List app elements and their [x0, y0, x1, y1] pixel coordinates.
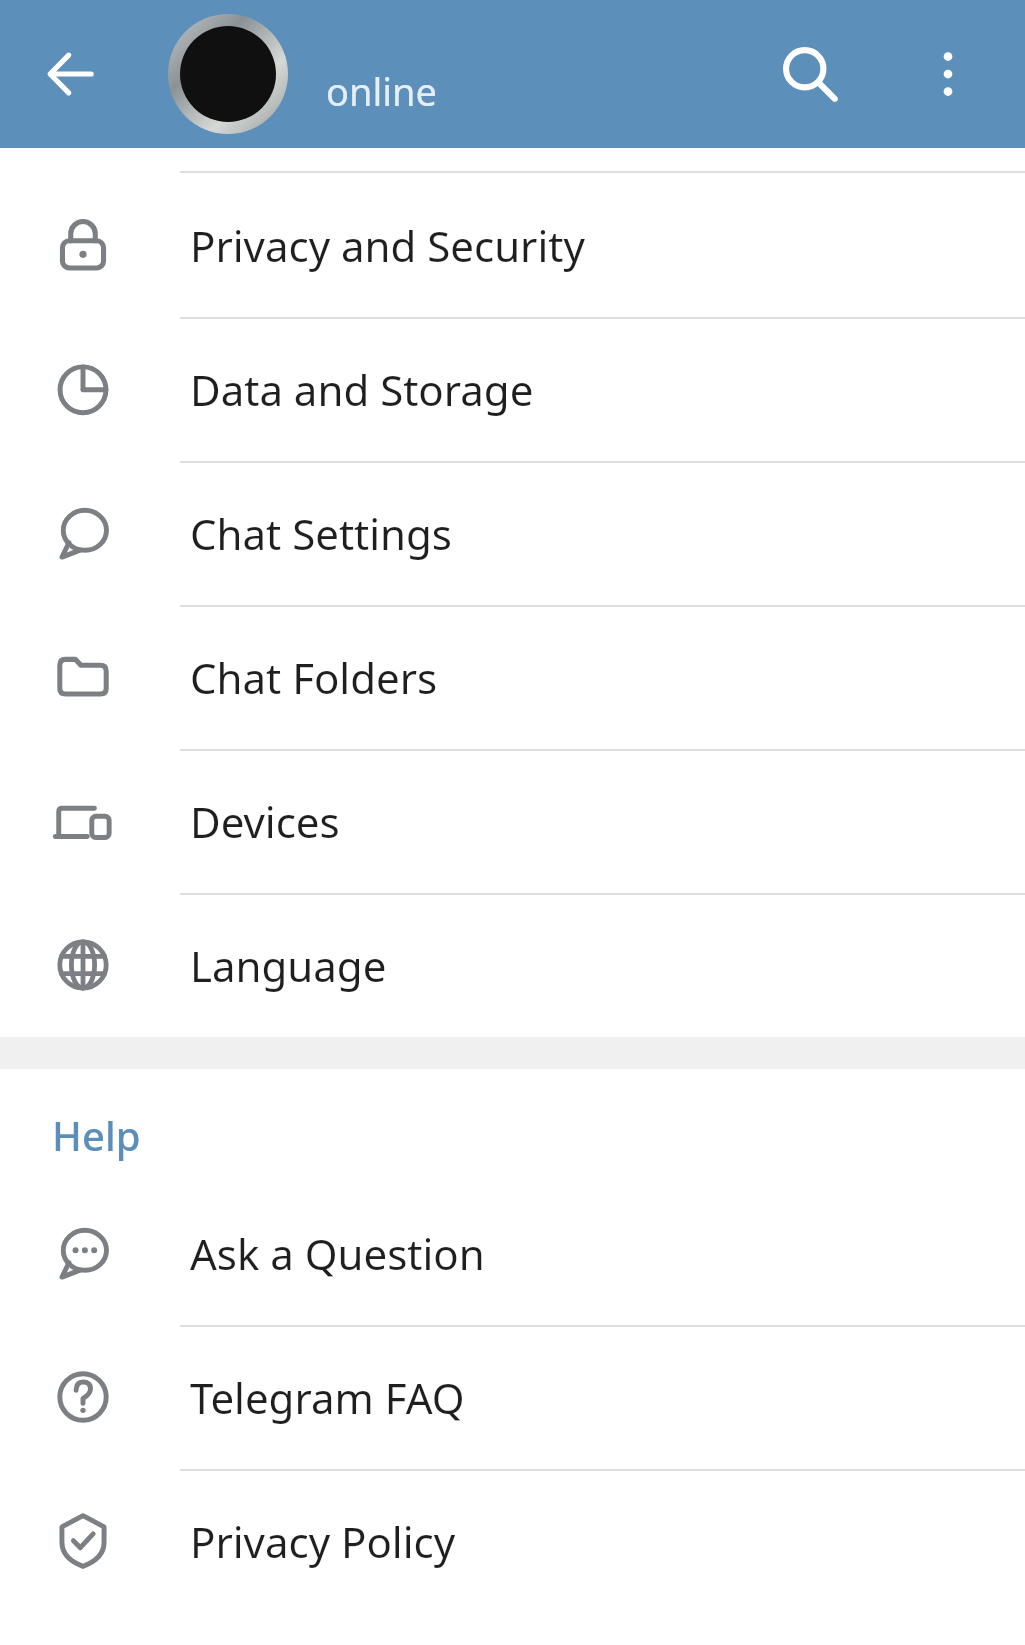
button[interactable]: More options: [918, 44, 978, 104]
button[interactable]: Telegram FAQ: [0, 1325, 1025, 1469]
staticText: Privacy Policy: [190, 1513, 456, 1570]
button[interactable]: Language: [0, 893, 1025, 1037]
button[interactable]: Ask a Question: [0, 1181, 1025, 1325]
staticText: Privacy and Security: [190, 217, 585, 274]
button[interactable]: Chat Settings: [0, 461, 1025, 605]
staticText: Language: [190, 937, 387, 994]
button[interactable]: Chat Folders: [0, 605, 1025, 749]
button[interactable]: Profile photo: [168, 14, 288, 134]
staticText: Ask a Question: [190, 1225, 485, 1282]
button[interactable]: Privacy Policy: [0, 1469, 1025, 1613]
button[interactable]: Data and Storage: [0, 317, 1025, 461]
staticText: Devices: [190, 793, 340, 850]
staticText: Chat Settings: [190, 505, 452, 562]
button[interactable]: Privacy and Security: [0, 173, 1025, 317]
staticText: Help: [52, 1108, 141, 1162]
button[interactable]: Back: [39, 43, 101, 105]
staticText: online: [326, 65, 437, 117]
button[interactable]: Search: [775, 39, 845, 109]
staticText: Telegram FAQ: [190, 1369, 465, 1426]
staticText: Data and Storage: [190, 361, 534, 418]
staticText: Chat Folders: [190, 649, 438, 706]
button[interactable]: Devices: [0, 749, 1025, 893]
